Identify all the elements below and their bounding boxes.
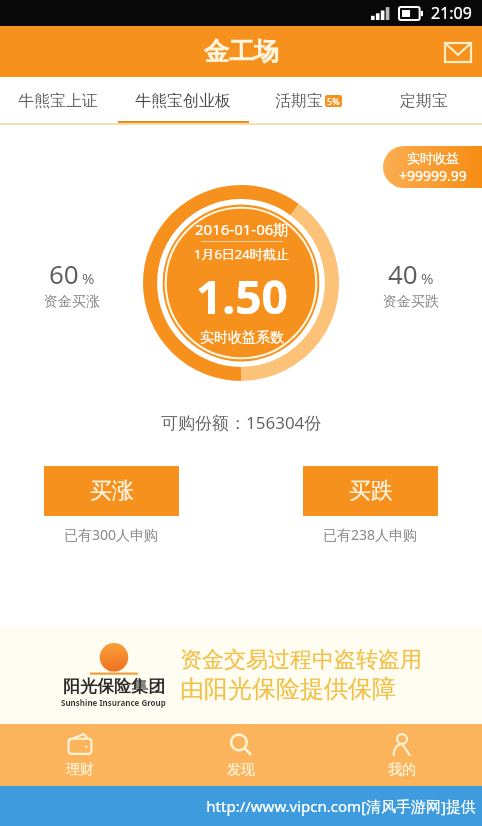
button[interactable]: 我的 bbox=[321, 724, 482, 786]
button[interactable]: 买涨 bbox=[44, 466, 179, 516]
staticText: 定期宝 bbox=[400, 91, 448, 111]
button[interactable]: 理财 bbox=[0, 724, 160, 786]
staticText: 我的 bbox=[388, 761, 416, 779]
staticText: 40 bbox=[388, 256, 418, 291]
staticText: 由阳光保险提供保障 bbox=[180, 674, 396, 704]
staticText: 买跌 bbox=[349, 477, 393, 505]
staticText: 已有300人申购 bbox=[64, 525, 159, 544]
button[interactable]: Messages bbox=[434, 28, 482, 76]
staticText: 5% bbox=[327, 95, 340, 107]
staticText: 实时收益 bbox=[407, 150, 459, 166]
staticText: 资金交易过程中盗转盗用 bbox=[180, 646, 422, 674]
staticText: 理财 bbox=[66, 761, 94, 779]
button[interactable]: 买跌 bbox=[303, 466, 438, 516]
staticText: % bbox=[421, 268, 434, 288]
staticText: 牛熊宝上证 bbox=[18, 91, 98, 111]
staticText: 金工场 bbox=[204, 36, 279, 67]
staticText: 资金买涨 bbox=[44, 293, 100, 311]
staticText: 60 bbox=[49, 256, 79, 291]
button[interactable]: 活期宝 bbox=[250, 77, 366, 125]
staticText: 牛熊宝创业板 bbox=[135, 91, 231, 111]
staticText: +99999.99 bbox=[399, 166, 467, 185]
button[interactable]: 定期宝 bbox=[366, 77, 482, 125]
button[interactable]: 实时收益 bbox=[383, 146, 482, 188]
staticText: 阳光保险集团 bbox=[63, 676, 165, 697]
staticText: 已有238人申购 bbox=[323, 525, 418, 544]
staticText: 21:09 bbox=[431, 2, 472, 24]
button[interactable]: 发现 bbox=[160, 724, 321, 786]
staticText: 可购份额：156304份 bbox=[161, 411, 322, 434]
staticText: 实时收益系数 bbox=[200, 329, 284, 347]
staticText: http://www.vipcn.com[清风手游网]提供 bbox=[206, 796, 476, 816]
button[interactable]: 牛熊宝创业板 bbox=[116, 77, 250, 125]
staticText: 活期宝 bbox=[275, 91, 323, 111]
staticText: Sunshine Insurance Group bbox=[61, 697, 166, 708]
staticText: 资金买跌 bbox=[383, 293, 439, 311]
staticText: 1月6日24时截止 bbox=[194, 245, 289, 263]
staticText: 1.50 bbox=[196, 265, 288, 328]
staticText: 买涨 bbox=[90, 477, 134, 505]
staticText: % bbox=[82, 268, 95, 288]
button[interactable]: 牛熊宝上证 bbox=[0, 77, 116, 125]
button[interactable]: 阳光保险集团 bbox=[0, 626, 482, 724]
staticText: 2016-01-06期 bbox=[195, 219, 289, 239]
staticText: 发现 bbox=[227, 761, 255, 779]
